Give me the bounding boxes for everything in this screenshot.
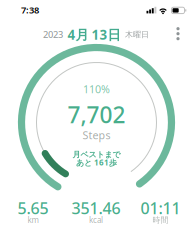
staticText: 5.65	[17, 197, 48, 219]
staticText: 木曜日	[125, 30, 149, 39]
staticText: 110%	[83, 82, 110, 96]
staticText: 351.46	[71, 197, 120, 219]
staticText: 月ベストまで	[72, 150, 120, 159]
button[interactable]: More options	[170, 25, 186, 43]
staticText: 7:38	[21, 4, 39, 16]
staticText: あと 161歩	[76, 157, 117, 168]
staticText: 7,702	[67, 99, 125, 129]
staticText: 時間	[152, 215, 168, 225]
staticText: 4月 13日	[67, 26, 120, 43]
staticText: Steps	[82, 128, 110, 142]
staticText: km	[27, 215, 38, 225]
staticText: 01:11	[140, 197, 180, 219]
staticText: 2023	[43, 28, 63, 41]
staticText: kcal	[89, 215, 103, 225]
button[interactable]: 2023	[43, 26, 149, 43]
